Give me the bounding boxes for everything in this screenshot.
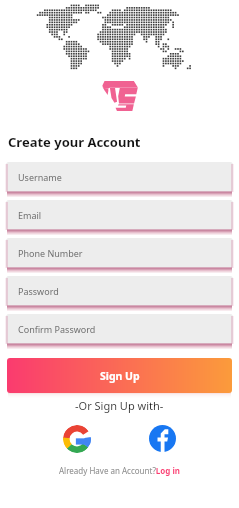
button[interactable]: Already Have an Account?Log in	[59, 465, 181, 476]
button[interactable]: Sign up with Facebook	[148, 424, 177, 453]
button[interactable]: Email	[6, 200, 233, 233]
staticText: Create your Account	[8, 133, 141, 151]
button[interactable]: Confirm Password	[6, 314, 233, 347]
button[interactable]: Sign Up	[7, 358, 232, 393]
staticText: Phone Number	[18, 247, 83, 259]
staticText: Sign Up	[100, 369, 140, 383]
button[interactable]: Phone Number	[6, 238, 233, 271]
staticText: -Or Sign Up with-	[75, 398, 164, 413]
staticText: Confirm Password	[18, 323, 96, 335]
button[interactable]: Password	[6, 276, 233, 309]
button[interactable]: Username	[6, 162, 233, 195]
staticText: Username	[18, 171, 62, 183]
staticText: Password	[18, 285, 59, 297]
button[interactable]: Sign up with Google	[62, 424, 91, 453]
staticText: Email	[18, 209, 42, 221]
